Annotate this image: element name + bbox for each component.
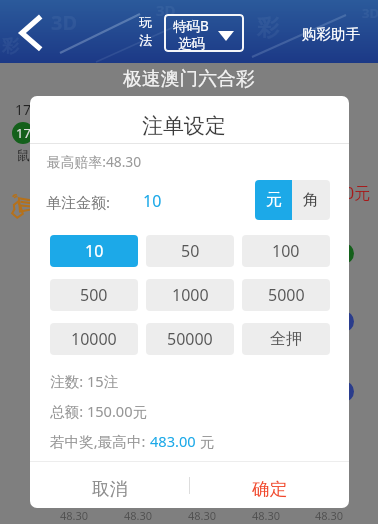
button[interactable]: 50 — [146, 235, 234, 267]
staticText: 彩 — [2, 36, 19, 57]
staticText: 注数: 15注 — [50, 371, 119, 391]
staticText: 3D — [156, 0, 176, 20]
button[interactable]: 取消 — [30, 462, 189, 508]
staticText: 48.30 — [252, 508, 281, 522]
button[interactable]: 1000 — [146, 279, 234, 311]
staticText: 若中奖,最高中: — [50, 431, 150, 451]
staticText: 48.30 — [124, 508, 153, 522]
staticText: 100 — [272, 240, 300, 262]
button[interactable]: 500 — [50, 279, 138, 311]
staticText: 5000 — [268, 284, 305, 306]
staticText: 0元 — [345, 182, 371, 204]
staticText: 48.30 — [60, 508, 89, 522]
staticText: 注单设定 — [142, 113, 226, 139]
staticText: 500 — [80, 284, 108, 306]
button[interactable]: 50000 — [146, 323, 234, 355]
staticText: 确定 — [252, 478, 287, 500]
staticText: 鼠 — [17, 147, 30, 163]
staticText: 元 — [266, 190, 282, 210]
button[interactable]: 全押 — [242, 323, 330, 355]
staticText: 10 — [143, 190, 162, 212]
staticText: 特码B — [173, 17, 209, 35]
staticText: 3D — [51, 9, 78, 36]
button[interactable]: 100 — [242, 235, 330, 267]
button[interactable]: 元 — [255, 180, 292, 220]
staticText: 17 — [15, 100, 32, 119]
staticText: 50 — [181, 240, 200, 262]
staticText: 48.30 — [315, 508, 344, 522]
staticText: 10000 — [71, 328, 117, 350]
staticText: 极速澳门六合彩 — [123, 67, 255, 91]
staticText: 单注金额: — [46, 192, 111, 212]
button[interactable]: 确定 — [189, 462, 349, 508]
staticText: 483.00 — [150, 431, 196, 451]
staticText: 角 — [303, 190, 319, 210]
button[interactable]: 5000 — [242, 279, 330, 311]
staticText: 彩 — [257, 14, 279, 42]
staticText: 法 — [139, 32, 152, 48]
staticText: 48.30 — [188, 508, 217, 522]
button[interactable]: 角 — [292, 180, 330, 220]
staticText: 3D — [362, 4, 378, 22]
staticText: 全押 — [270, 329, 302, 349]
staticText: 10 — [85, 240, 104, 262]
button[interactable]: 10 — [50, 235, 138, 267]
button[interactable]: 特码B — [164, 14, 244, 52]
staticText: 1000 — [172, 284, 209, 306]
staticText: 17 — [16, 124, 31, 142]
staticText: 元 — [196, 431, 215, 451]
button[interactable]: Back — [4, 8, 52, 56]
staticText: 取消 — [92, 478, 127, 500]
staticText: 购彩助手 — [302, 25, 360, 43]
staticText: 最高赔率:48.30 — [47, 152, 142, 171]
staticText: 50000 — [167, 328, 213, 350]
staticText: 选码 — [178, 35, 205, 52]
staticText: 总额: 150.00元 — [50, 401, 148, 421]
button[interactable]: 10000 — [50, 323, 138, 355]
staticText: 玩 — [139, 14, 152, 30]
